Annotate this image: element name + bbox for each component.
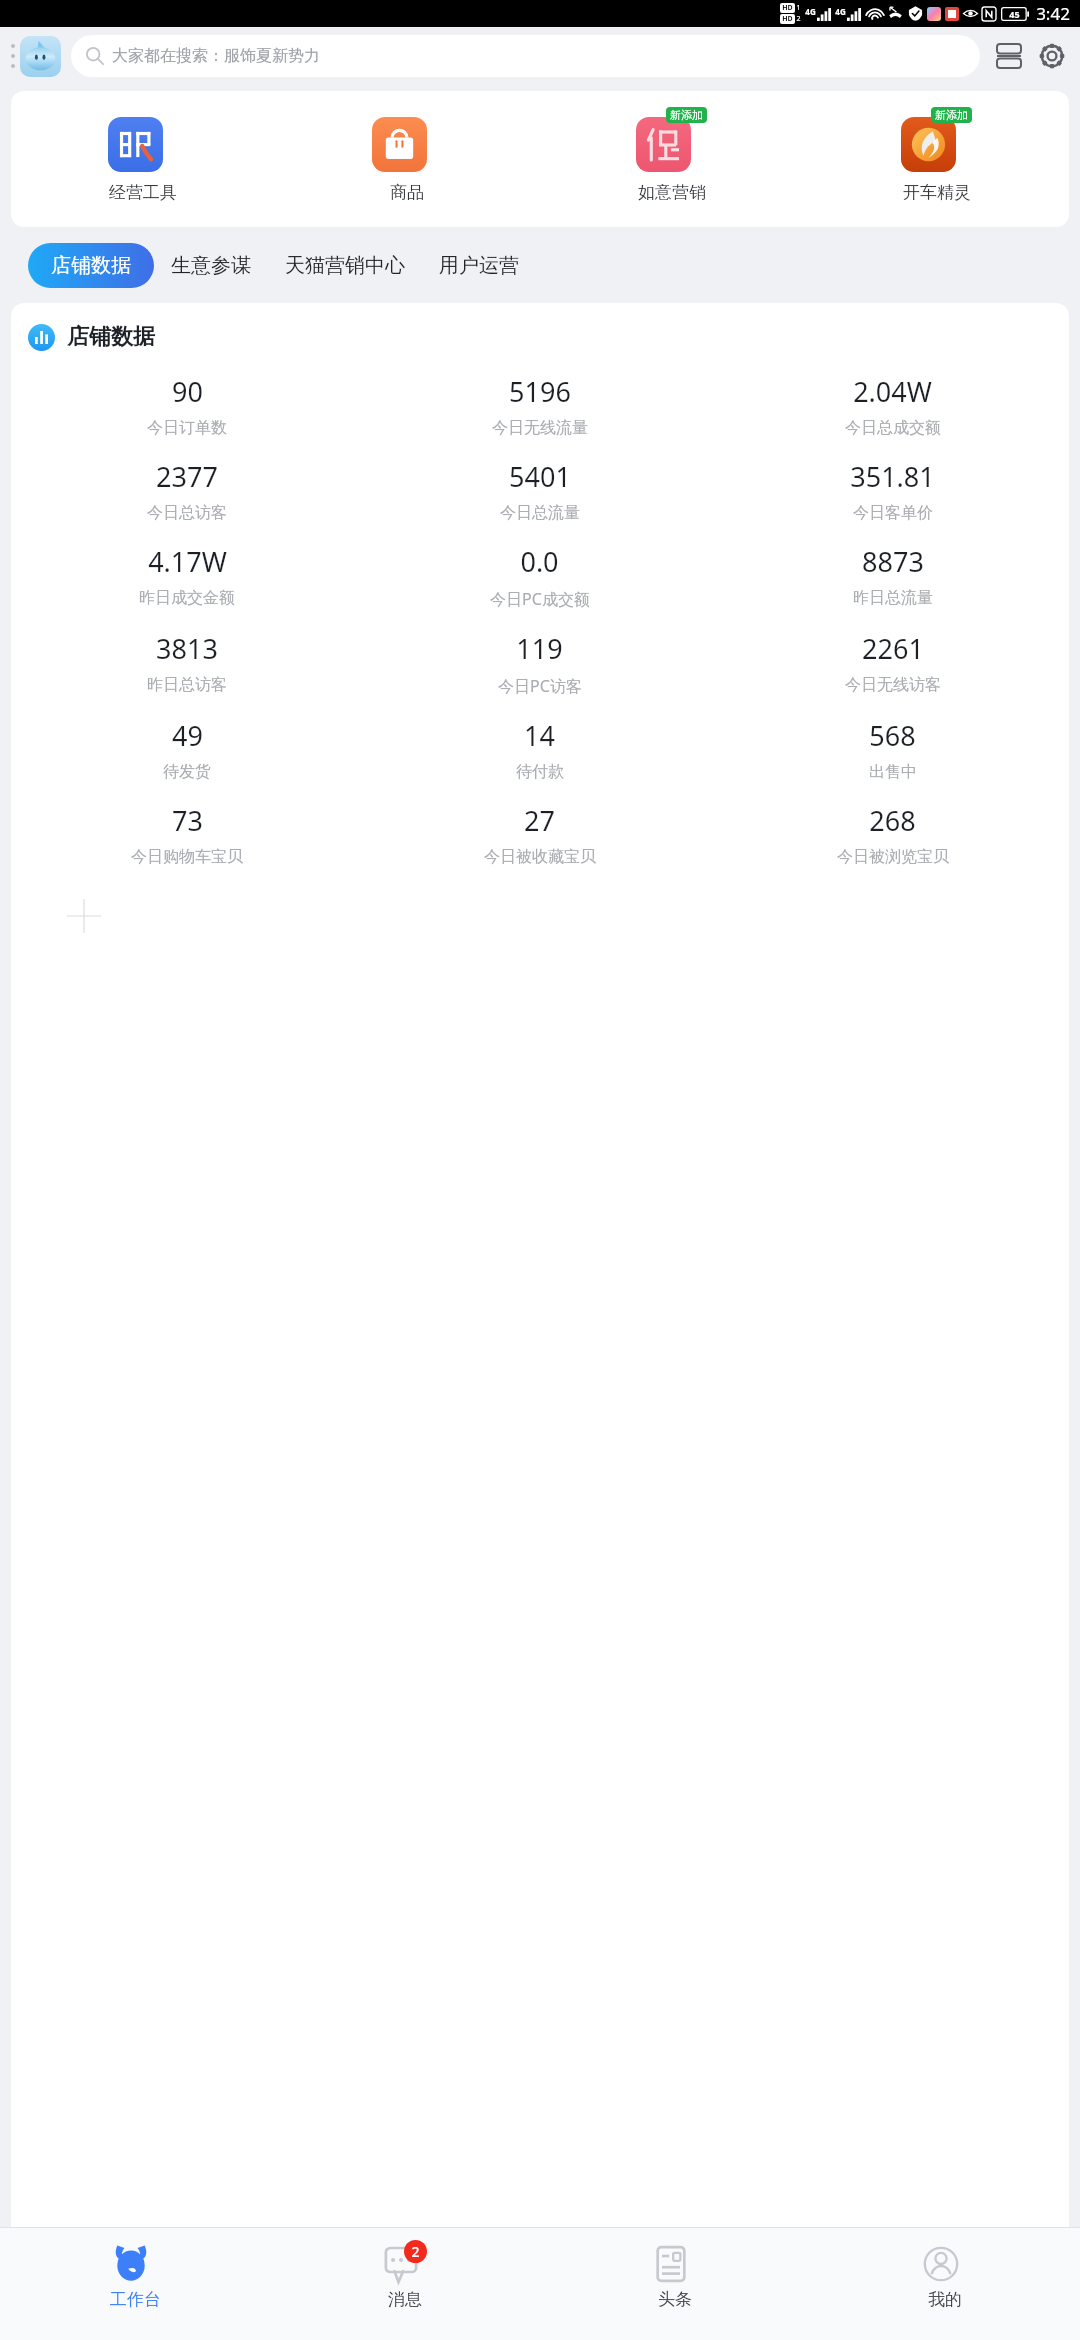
staticText: 49: [172, 717, 203, 754]
staticText: 用户运营: [439, 253, 519, 278]
staticText: 待发货: [163, 762, 211, 782]
staticText: 2: [411, 2242, 420, 2261]
button[interactable]: 5401: [363, 448, 716, 533]
button[interactable]: 0.0: [363, 533, 716, 620]
button[interactable]: 8873: [716, 533, 1069, 618]
button[interactable]: 经营工具: [11, 107, 275, 203]
staticText: 今日订单数: [147, 418, 227, 438]
button[interactable]: 2.04W: [716, 363, 1069, 448]
button[interactable]: 商品: [275, 107, 539, 203]
button[interactable]: 351.81: [716, 448, 1069, 533]
staticText: 119: [516, 630, 563, 667]
staticText: 27: [524, 802, 555, 839]
staticText: 8873: [862, 543, 924, 580]
button[interactable]: 49: [11, 707, 363, 792]
staticText: 工作台: [110, 2289, 161, 2310]
staticText: 新添加: [935, 108, 968, 122]
button[interactable]: 旺旺: [20, 36, 61, 77]
staticText: 268: [869, 802, 916, 839]
staticText: 今日总流量: [500, 503, 580, 523]
staticText: 今日无线流量: [492, 418, 588, 438]
staticText: 昨日总流量: [853, 588, 933, 608]
staticText: 5401: [509, 458, 571, 495]
staticText: 3:42: [1036, 2, 1070, 25]
staticText: 如意营销: [638, 182, 706, 203]
staticText: 2377: [156, 458, 218, 495]
staticText: 店铺数据: [67, 323, 155, 351]
staticText: 昨日成交金额: [139, 588, 235, 608]
staticText: 开车精灵: [903, 182, 971, 203]
staticText: 天猫营销中心: [285, 253, 405, 278]
staticText: 2.04W: [853, 373, 932, 410]
staticText: 今日PC成交额: [490, 588, 590, 610]
staticText: 新添加: [670, 108, 703, 122]
staticText: 今日被收藏宝贝: [484, 847, 596, 867]
staticText: 我的: [928, 2289, 962, 2310]
staticText: 生意参谋: [171, 253, 251, 278]
staticText: 568: [869, 717, 916, 754]
button[interactable]: 生意参谋: [154, 243, 268, 288]
staticText: 4.17W: [148, 543, 227, 580]
staticText: 3813: [156, 630, 218, 667]
staticText: 店铺数据: [51, 253, 131, 278]
staticText: 昨日总访客: [147, 675, 227, 695]
button[interactable]: 新添加: [539, 107, 804, 203]
staticText: 大家都在搜索：服饰夏新势力: [112, 46, 320, 66]
button[interactable]: 4.17W: [11, 533, 363, 618]
button[interactable]: 我的: [810, 2228, 1080, 2340]
staticText: 5196: [509, 373, 571, 410]
staticText: 45: [1009, 8, 1020, 20]
staticText: 2261: [862, 630, 924, 667]
staticText: HD: [782, 14, 793, 24]
staticText: 1: [796, 3, 801, 13]
staticText: 73: [172, 802, 203, 839]
staticText: 351.81: [850, 458, 935, 495]
button[interactable]: 用户运营: [422, 243, 536, 288]
staticText: 今日无线访客: [845, 675, 941, 695]
staticText: 今日总访客: [147, 503, 227, 523]
button[interactable]: 2261: [716, 620, 1069, 705]
button[interactable]: 27: [363, 792, 716, 877]
staticText: 出售中: [869, 762, 917, 782]
button[interactable]: 2: [270, 2228, 540, 2340]
button[interactable]: 119: [363, 620, 716, 707]
button[interactable]: 头条: [540, 2228, 810, 2340]
button[interactable]: 73: [11, 792, 363, 877]
button[interactable]: 3813: [11, 620, 363, 705]
button[interactable]: 2377: [11, 448, 363, 533]
staticText: 今日PC访客: [498, 675, 582, 697]
staticText: 消息: [388, 2289, 422, 2310]
staticText: 4G: [805, 6, 816, 17]
staticText: 商品: [390, 182, 424, 203]
button[interactable]: 90: [11, 363, 363, 448]
staticText: 待付款: [516, 762, 564, 782]
button[interactable]: 分屏: [988, 35, 1030, 77]
button[interactable]: 268: [716, 792, 1069, 877]
staticText: 0.0: [520, 543, 559, 580]
staticText: 今日被浏览宝贝: [837, 847, 949, 867]
button[interactable]: 568: [716, 707, 1069, 792]
staticText: 4G: [835, 6, 846, 17]
staticText: 今日客单价: [853, 503, 933, 523]
button[interactable]: 设置: [1030, 34, 1074, 78]
button[interactable]: 店铺数据: [28, 243, 154, 288]
button[interactable]: 5196: [363, 363, 716, 448]
button[interactable]: 天猫营销中心: [268, 243, 422, 288]
staticText: 今日购物车宝贝: [131, 847, 243, 867]
staticText: HD: [782, 3, 793, 13]
staticText: 14: [524, 717, 555, 754]
staticText: 2: [796, 14, 801, 24]
button[interactable]: 新添加: [804, 107, 1069, 203]
button[interactable]: 大家都在搜索：服饰夏新势力: [71, 35, 980, 77]
staticText: 今日总成交额: [845, 418, 941, 438]
button[interactable]: 14: [363, 707, 716, 792]
staticText: 90: [172, 373, 203, 410]
button[interactable]: 工作台: [0, 2228, 270, 2340]
staticText: 头条: [658, 2289, 692, 2310]
staticText: 经营工具: [109, 182, 177, 203]
